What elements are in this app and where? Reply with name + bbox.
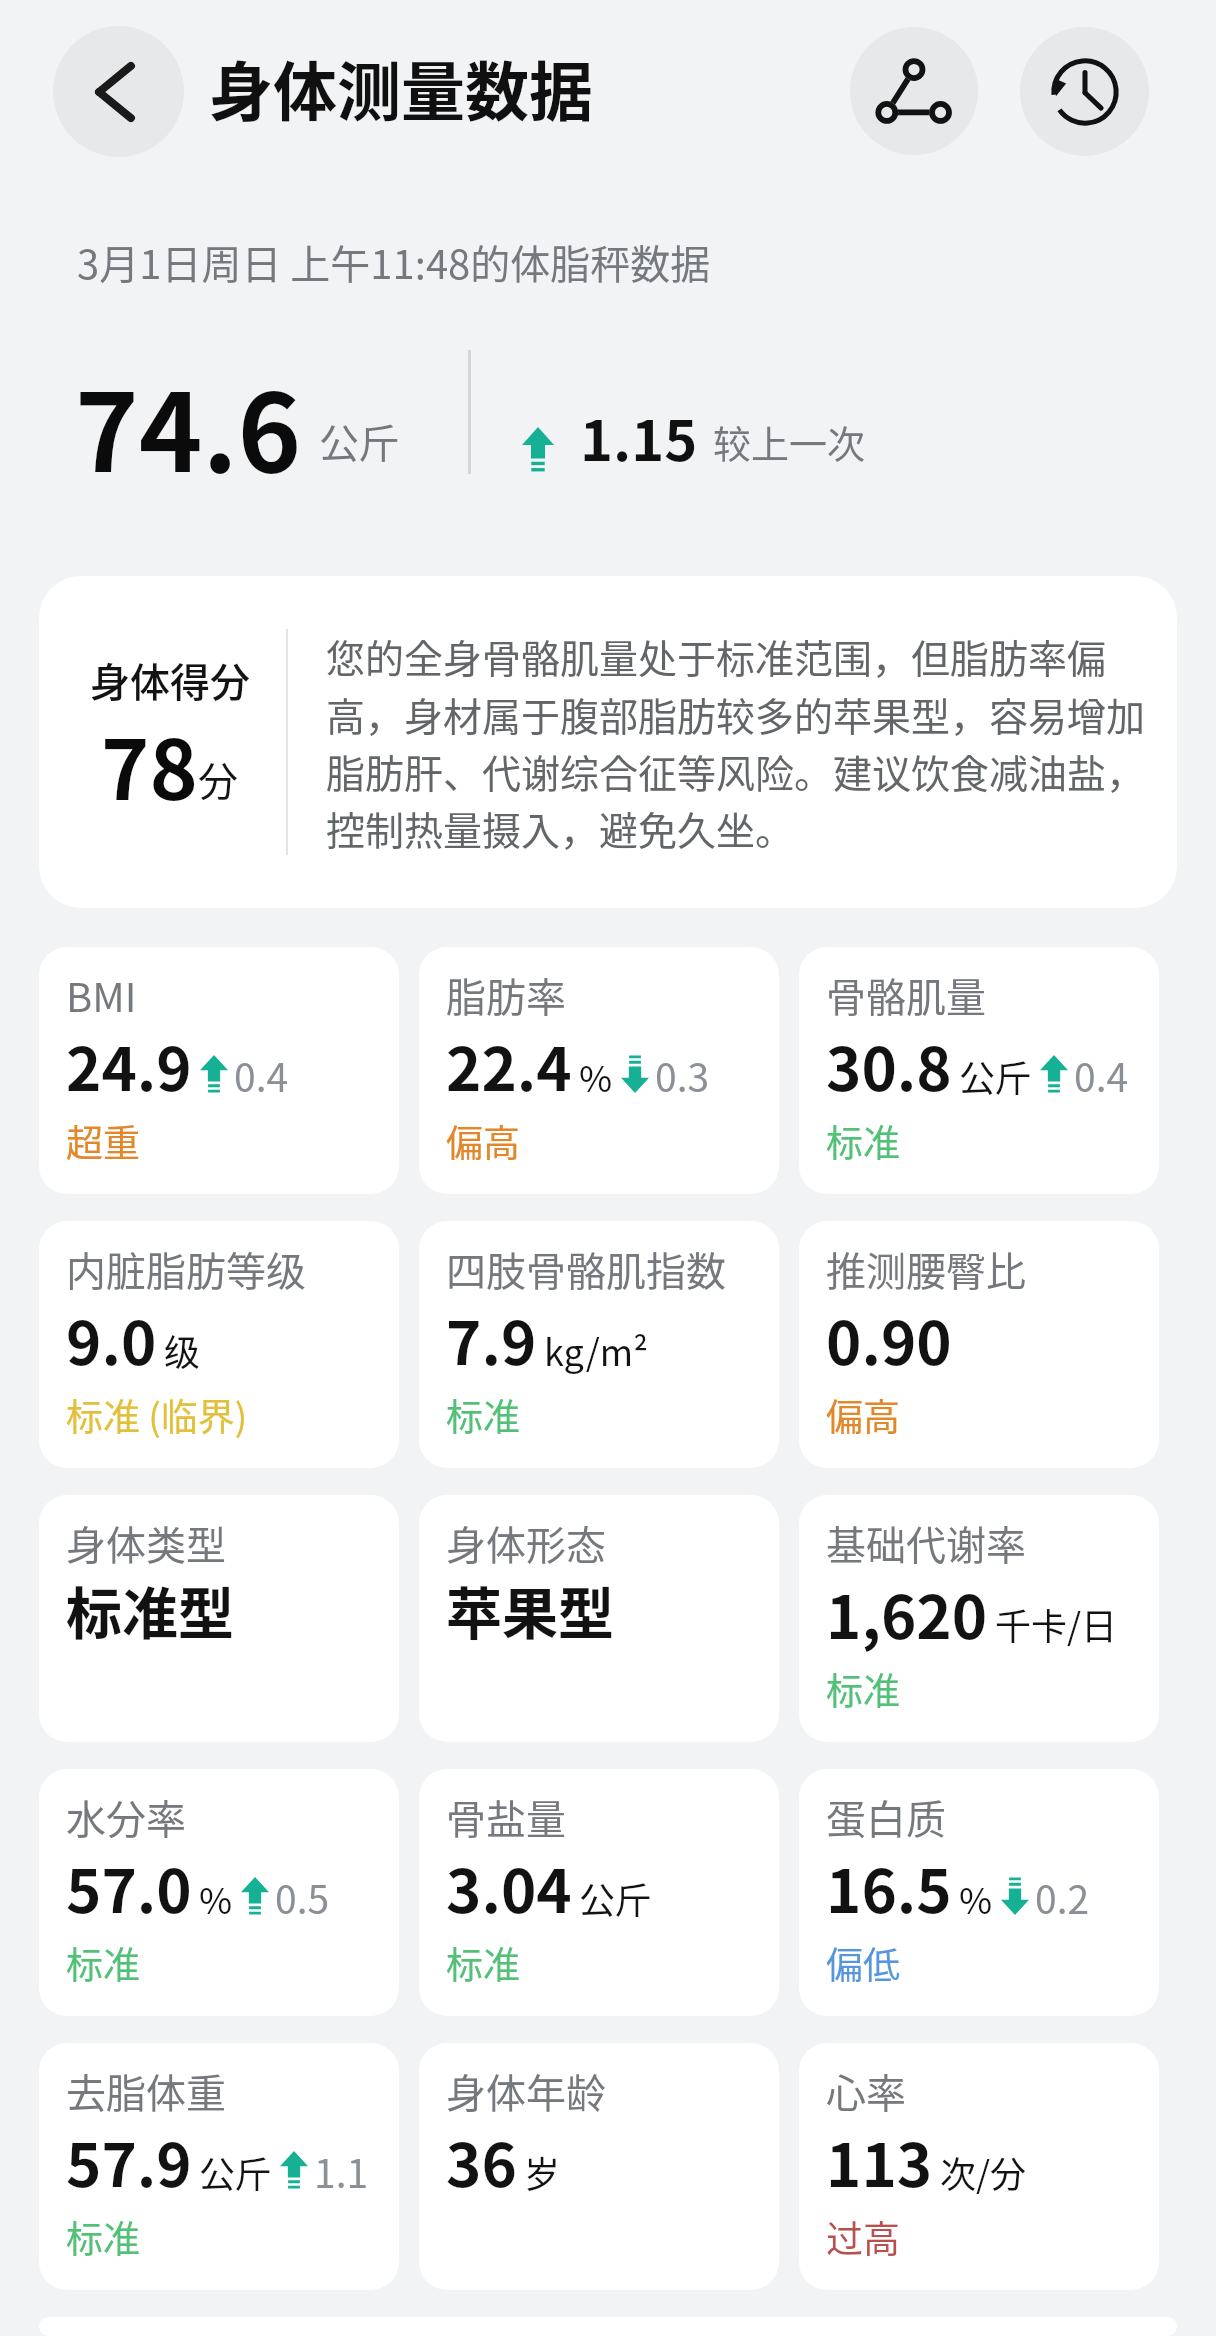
staticText: 30.8	[826, 1021, 952, 1108]
staticText: 过高	[826, 2210, 900, 2264]
staticText: 0.4	[1074, 1047, 1129, 1103]
staticText: 3月1日周日 上午11:48的体脂秤数据	[77, 233, 711, 291]
staticText: 偏低	[826, 1936, 900, 1990]
staticText: 标准 (临界)	[66, 1388, 248, 1442]
button[interactable]: 心率	[799, 2043, 1159, 2290]
button[interactable]: 骨骼肌量	[799, 947, 1159, 1194]
staticText: 57.0	[66, 1843, 192, 1930]
button[interactable]: 脂肪率	[419, 947, 779, 1194]
staticText: 骨盐量	[446, 1788, 566, 1846]
staticText: 去脂体重	[66, 2062, 226, 2120]
staticText: 标准	[826, 1662, 900, 1716]
staticText: 偏高	[826, 1388, 900, 1442]
staticText: 身体类型	[66, 1514, 226, 1572]
staticText: 标准型	[66, 1569, 234, 1650]
button[interactable]: Back	[53, 26, 184, 157]
button[interactable]: BMI	[39, 947, 399, 1194]
button[interactable]: Share	[850, 27, 978, 155]
staticText: %	[579, 1050, 613, 1102]
staticText: 身体得分	[90, 651, 250, 709]
staticText: 次/分	[940, 2146, 1027, 2198]
staticText: 标准	[66, 1936, 140, 1990]
staticText: 心率	[826, 2062, 906, 2120]
staticText: 分	[198, 750, 238, 808]
staticText: 36	[446, 2117, 517, 2204]
staticText: kg/m²	[544, 1324, 648, 1376]
staticText: 身体年龄	[446, 2062, 606, 2120]
button[interactable]: 身体年龄	[419, 2043, 779, 2290]
staticText: 偏高	[446, 1114, 520, 1168]
button[interactable]: 身体得分	[39, 576, 1177, 908]
staticText: 0.3	[655, 1047, 710, 1103]
staticText: 四肢骨骼肌指数	[446, 1240, 726, 1298]
staticText: BMI	[66, 966, 137, 1024]
staticText: 较上一次	[713, 414, 866, 469]
staticText: 78	[101, 705, 198, 824]
staticText: 公斤	[579, 1872, 652, 1924]
staticText: 24.9	[66, 1021, 192, 1108]
button[interactable]: 蛋白质	[799, 1769, 1159, 2016]
staticText: 1,620	[826, 1569, 988, 1656]
staticText: 0.90	[826, 1295, 952, 1382]
staticText: 1.15	[580, 396, 698, 477]
staticText: 超重	[66, 1114, 140, 1168]
button[interactable]: 水分率	[39, 1769, 399, 2016]
staticText: 级	[164, 1324, 201, 1376]
staticText: 标准	[446, 1936, 520, 1990]
staticText: %	[199, 1872, 233, 1924]
staticText: 岁	[524, 2146, 561, 2198]
button[interactable]: 骨盐量	[419, 1769, 779, 2016]
staticText: 苹果型	[446, 1569, 614, 1650]
button[interactable]: 内脏脂肪等级	[39, 1221, 399, 1468]
staticText: 0.4	[234, 1047, 289, 1103]
button[interactable]: History	[1020, 27, 1149, 156]
staticText: 基础代谢率	[826, 1514, 1026, 1572]
button[interactable]: 基础代谢率	[799, 1495, 1159, 1742]
staticText: 公斤	[959, 1050, 1032, 1102]
staticText: 标准	[826, 1114, 900, 1168]
staticText: 内脏脂肪等级	[66, 1240, 306, 1298]
staticText: 脂肪率	[446, 966, 566, 1024]
staticText: 千卡/日	[995, 1598, 1118, 1650]
staticText: 57.9	[66, 2117, 192, 2204]
staticText: 身体形态	[446, 1514, 606, 1572]
staticText: 公斤	[199, 2146, 272, 2198]
staticText: 身体测量数据	[209, 41, 593, 134]
staticText: 74.6	[75, 347, 302, 482]
staticText: 您的全身骨骼肌量处于标准范围，但脂肪率偏 高，身材属于腹部脂肪较多的苹果型，容易…	[326, 628, 1145, 856]
button[interactable]: 推测腰臀比	[799, 1221, 1159, 1468]
button[interactable]: 身体类型	[39, 1495, 399, 1742]
staticText: 7.9	[446, 1295, 537, 1382]
staticText: 标准	[446, 1388, 520, 1442]
staticText: 9.0	[66, 1295, 157, 1382]
staticText: 水分率	[66, 1788, 186, 1846]
staticText: 3.04	[446, 1843, 572, 1930]
staticText: 推测腰臀比	[826, 1240, 1026, 1298]
staticText: %	[959, 1872, 993, 1924]
staticText: 22.4	[446, 1021, 572, 1108]
staticText: 113	[826, 2117, 933, 2204]
staticText: 标准	[66, 2210, 140, 2264]
staticText: 骨骼肌量	[826, 966, 986, 1024]
staticText: 16.5	[826, 1843, 952, 1930]
button[interactable]: 去脂体重	[39, 2043, 399, 2290]
staticText: 1.1	[314, 2143, 369, 2199]
staticText: 0.2	[1035, 1869, 1090, 1925]
staticText: 0.5	[275, 1869, 330, 1925]
button[interactable]: 身体形态	[419, 1495, 779, 1742]
staticText: 蛋白质	[826, 1788, 946, 1846]
staticText: 公斤	[319, 412, 399, 470]
button[interactable]: 四肢骨骼肌指数	[419, 1221, 779, 1468]
